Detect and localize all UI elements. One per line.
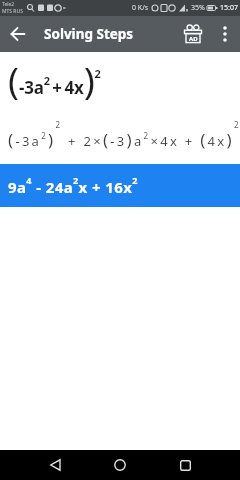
button[interactable]: (-3a2)2 + 2×(-3)a2×4x + (4x)2 xyxy=(8,119,240,151)
button[interactable]: AD xyxy=(176,16,210,52)
staticText: 35% xyxy=(191,3,205,13)
staticText: AD xyxy=(189,35,198,43)
button[interactable] xyxy=(173,453,197,477)
staticText: 15:07 xyxy=(220,3,238,13)
button[interactable] xyxy=(43,453,67,477)
button[interactable]: (-3a2 + 4x)2 xyxy=(8,54,101,104)
staticText: 9a4 - 24a2x + 16x2 xyxy=(8,174,138,198)
staticText: MTS RUS xyxy=(2,8,23,15)
button[interactable] xyxy=(0,16,36,52)
button[interactable] xyxy=(210,16,240,52)
button[interactable]: 9a4 - 24a2x + 16x2 xyxy=(0,164,240,207)
staticText: 0 K/s xyxy=(132,3,149,13)
button[interactable] xyxy=(108,453,132,477)
staticText: Tele2 xyxy=(2,1,15,8)
staticText: Solving Steps xyxy=(44,25,134,43)
